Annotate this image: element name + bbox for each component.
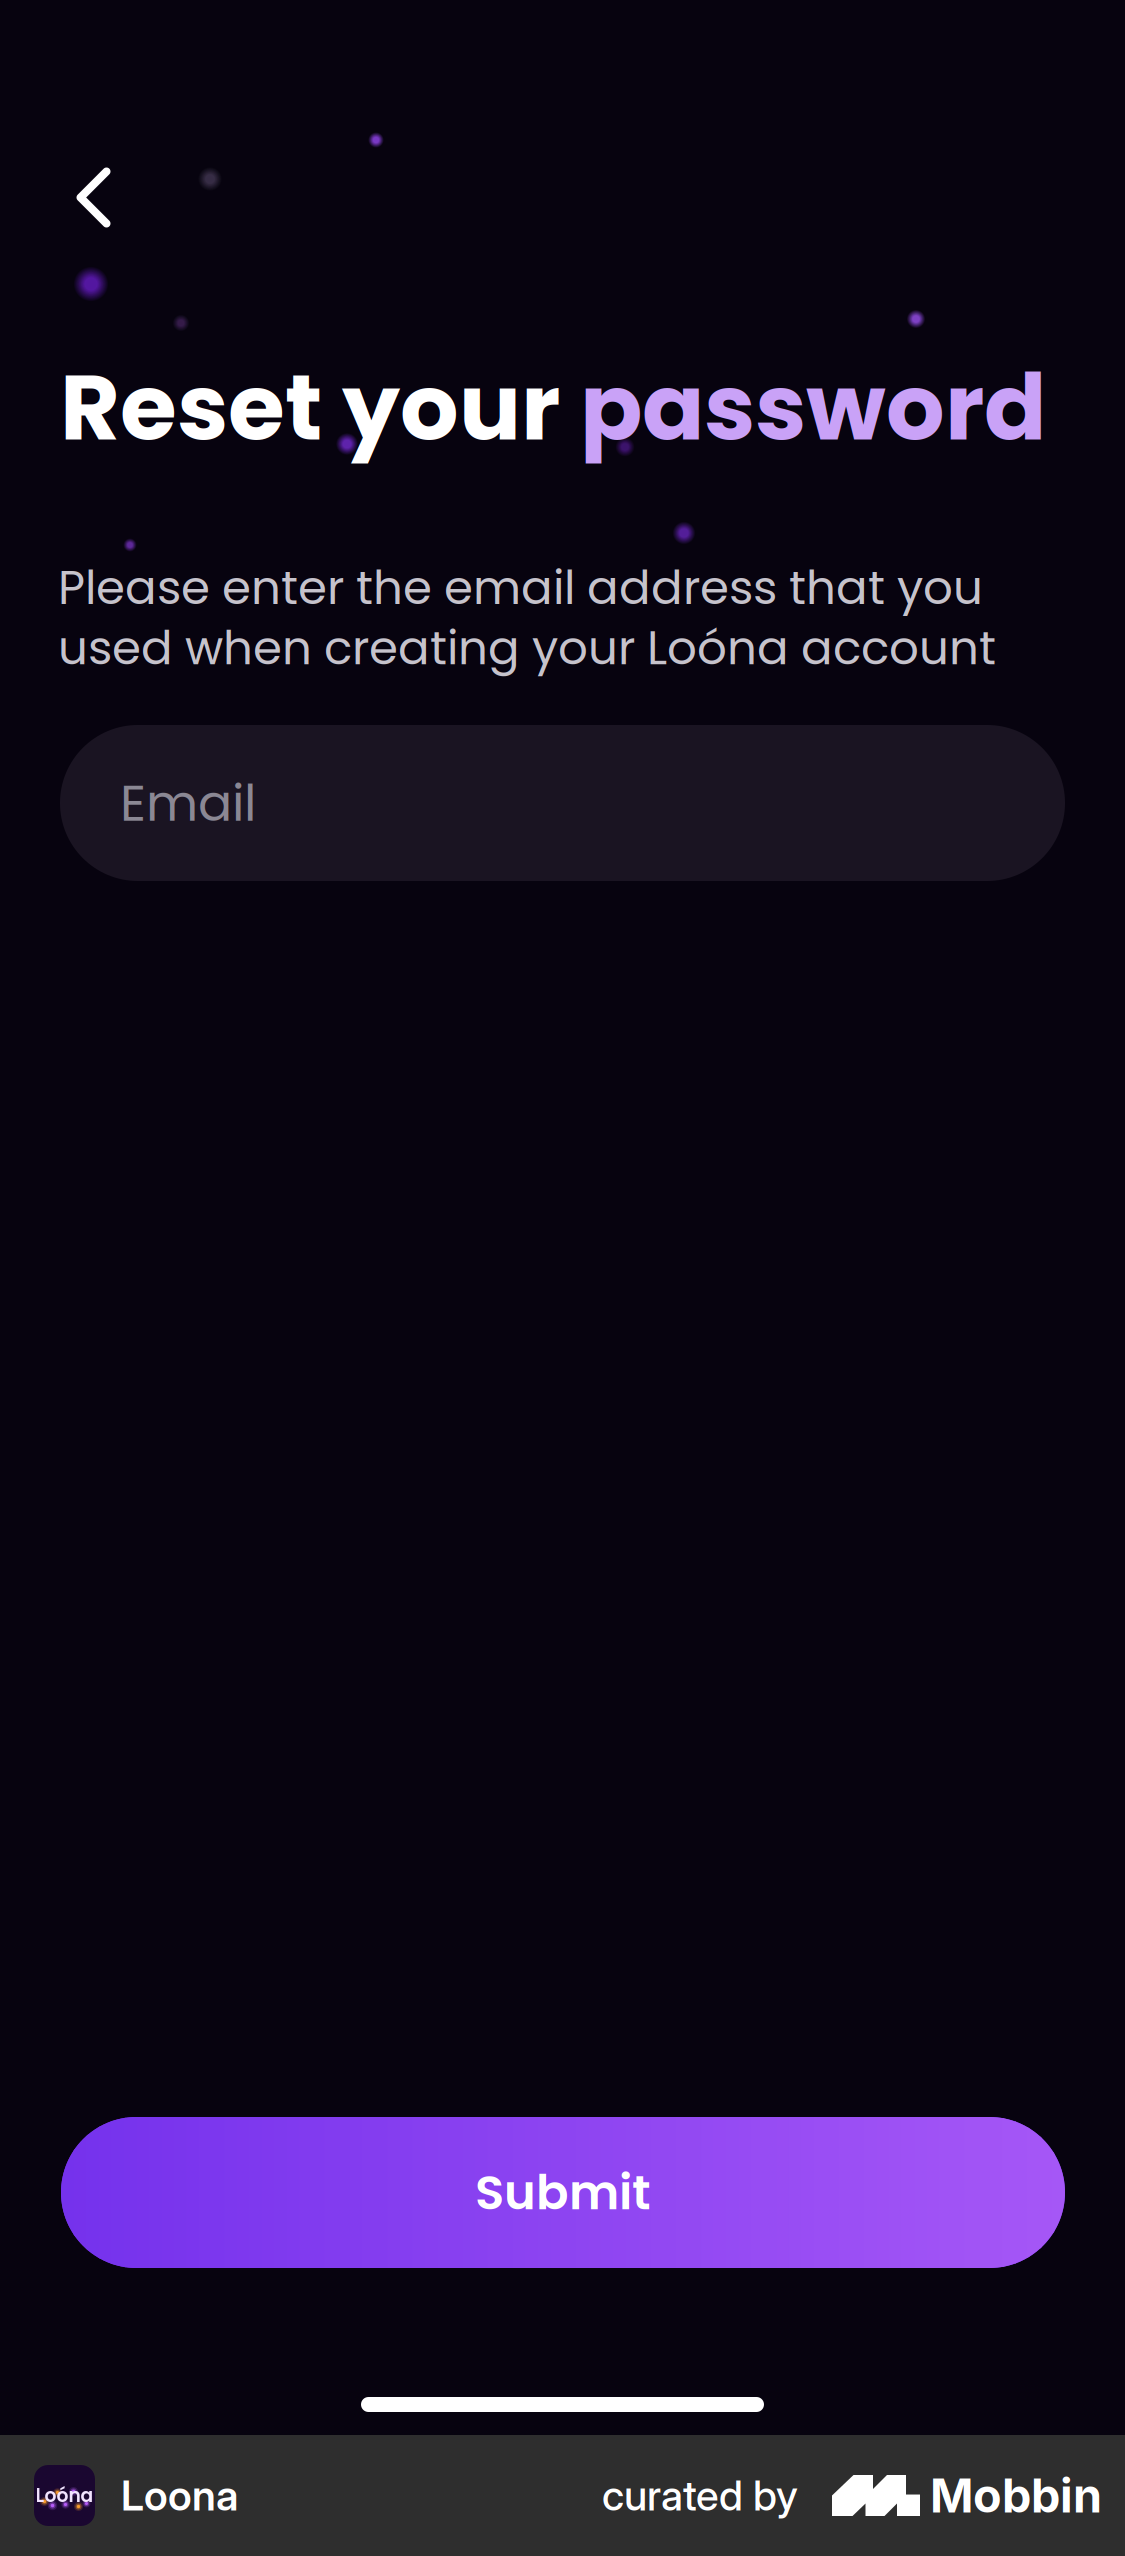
staticText: Loóna [35, 2482, 93, 2508]
button[interactable]: Back [33, 138, 153, 258]
button[interactable]: Submit [61, 2117, 1065, 2268]
staticText: Please enter the email address that you … [58, 555, 996, 681]
staticText: Email [120, 767, 256, 838]
staticText: Loona [121, 2470, 238, 2520]
staticText: Submit [475, 2159, 651, 2226]
staticText: Mobbin [930, 2467, 1102, 2524]
staticText: curated by [602, 2470, 798, 2520]
staticText: Reset your [60, 343, 580, 472]
button[interactable]: Email [60, 725, 1065, 881]
staticText: password [580, 343, 1046, 472]
